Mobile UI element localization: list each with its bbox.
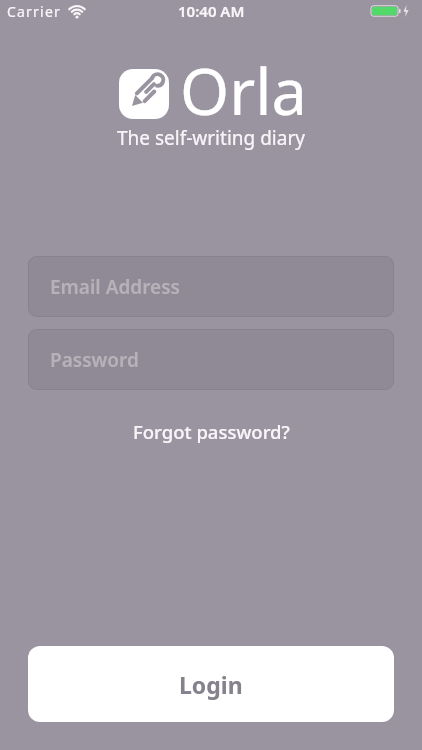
button[interactable]: Login — [28, 646, 394, 722]
button[interactable]: Email Address — [28, 256, 394, 317]
button[interactable]: Password — [28, 329, 394, 390]
staticText: The self-writing diary — [117, 125, 305, 151]
staticText: 10:40 AM — [178, 1, 245, 21]
button[interactable]: Forgot password? — [133, 419, 290, 444]
staticText: Login — [179, 669, 243, 700]
staticText: Email Address — [50, 274, 180, 300]
staticText: Orla — [180, 48, 307, 134]
staticText: Carrier — [7, 2, 61, 21]
staticText: Password — [50, 347, 139, 373]
